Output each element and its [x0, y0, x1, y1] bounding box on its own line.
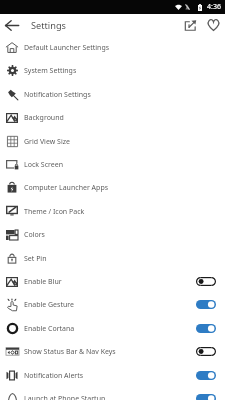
button[interactable]: Notification Settings — [0, 83, 225, 106]
button[interactable]: Enabled — [196, 324, 216, 333]
staticText: Computer Launcher Apps — [24, 183, 221, 193]
button[interactable]: Background — [0, 106, 225, 129]
button[interactable]: Colors — [0, 223, 225, 246]
staticText: Default Launcher Settings — [24, 43, 221, 53]
staticText: Theme / Icon Pack — [24, 207, 221, 217]
button[interactable]: Enable Gesture — [0, 293, 225, 316]
staticText: Set Pin — [24, 254, 221, 264]
button[interactable]: Grid View Size — [0, 130, 225, 153]
staticText: Background — [24, 113, 221, 123]
button[interactable]: Enable Blur — [0, 270, 225, 293]
staticText: Lock Screen — [24, 160, 221, 170]
button[interactable]: Show Status Bar & Nav Keys — [0, 340, 225, 363]
button[interactable]: Computer Launcher Apps — [0, 176, 225, 199]
button[interactable]: Default Launcher Settings — [0, 36, 225, 59]
staticText: Enable Gesture — [24, 300, 196, 310]
button[interactable]: Disabled — [196, 277, 216, 286]
button[interactable]: Enable Cortana — [0, 317, 225, 340]
button[interactable]: System Settings — [0, 59, 225, 82]
button[interactable]: Lock Screen — [0, 153, 225, 176]
staticText: 4:36 — [207, 2, 221, 12]
button[interactable]: Theme / Icon Pack — [0, 200, 225, 223]
staticText: Notification Settings — [24, 90, 221, 100]
button[interactable]: Share — [179, 14, 201, 36]
staticText: Enable Blur — [24, 277, 196, 287]
button[interactable]: Enabled — [196, 300, 216, 309]
button[interactable]: Disabled — [196, 347, 216, 356]
button[interactable]: Back — [0, 14, 24, 36]
button[interactable]: Launch at Phone Startup — [0, 387, 225, 400]
staticText: Grid View Size — [24, 137, 221, 147]
button[interactable]: Set Pin — [0, 247, 225, 270]
staticText: Colors — [24, 230, 221, 240]
staticText: Settings — [31, 19, 66, 32]
staticText: Enable Cortana — [24, 324, 196, 334]
staticText: Launch at Phone Startup — [24, 394, 196, 400]
button[interactable]: Enabled — [196, 394, 216, 400]
button[interactable]: Favorite — [201, 14, 225, 36]
button[interactable]: Notification Alerts — [0, 364, 225, 387]
staticText: Show Status Bar & Nav Keys — [24, 347, 196, 357]
staticText: System Settings — [24, 66, 221, 76]
staticText: Notification Alerts — [24, 371, 196, 381]
button[interactable]: Enabled — [196, 371, 216, 380]
